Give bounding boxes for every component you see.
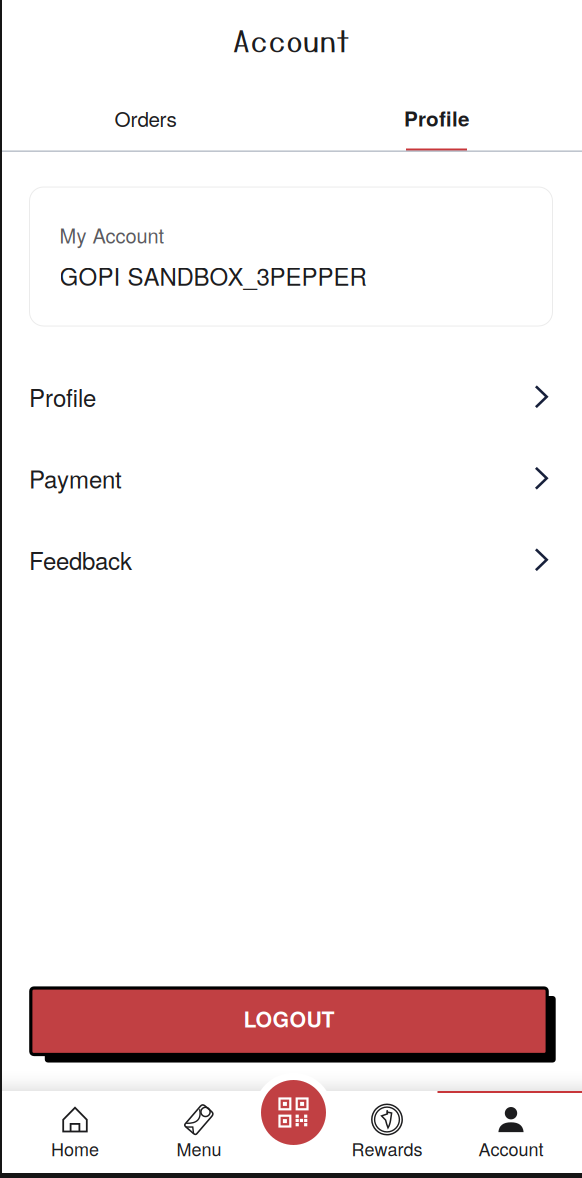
staticText: Rewards: [351, 1135, 422, 1161]
button[interactable]: Orders: [0, 84, 291, 152]
staticText: Account: [232, 23, 349, 58]
button[interactable]: LOGOUT: [31, 988, 556, 1062]
button[interactable]: Profile: [0, 356, 582, 437]
staticText: Home: [51, 1135, 99, 1161]
button[interactable]: Home: [13, 1090, 137, 1178]
staticText: Profile: [404, 103, 469, 133]
button[interactable]: Rewards: [325, 1090, 449, 1178]
staticText: Payment: [29, 461, 122, 495]
button[interactable]: Account: [449, 1090, 573, 1178]
staticText: GOPI SANDBOX_3PEPPER: [59, 258, 366, 292]
button[interactable]: Payment: [0, 437, 582, 519]
staticText: Menu: [176, 1135, 221, 1161]
staticText: LOGOUT: [243, 1003, 334, 1034]
button[interactable]: Feedback: [0, 519, 582, 600]
staticText: Orders: [114, 103, 176, 133]
button[interactable]: Profile: [291, 84, 582, 152]
button[interactable]: Scan code: [261, 1080, 326, 1145]
staticText: Feedback: [29, 543, 132, 577]
staticText: Profile: [29, 380, 96, 414]
button[interactable]: Menu: [137, 1090, 261, 1178]
staticText: Account: [478, 1135, 543, 1161]
staticText: My Account: [59, 220, 164, 249]
